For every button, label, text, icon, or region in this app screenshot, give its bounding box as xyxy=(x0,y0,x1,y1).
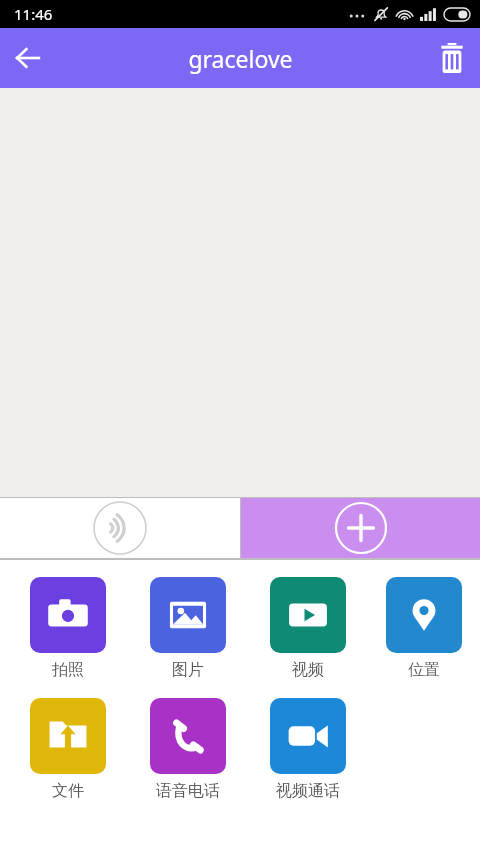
staticText: 视频通话 xyxy=(276,781,340,801)
button[interactable]: 语音电话 xyxy=(128,696,248,803)
button[interactable]: 图片 xyxy=(128,575,248,682)
button[interactable]: Voice message xyxy=(0,498,240,558)
staticText: 视频 xyxy=(292,660,324,680)
button[interactable]: 视频 xyxy=(248,575,368,682)
staticText: 语音电话 xyxy=(156,781,220,801)
staticText: 位置 xyxy=(408,660,440,680)
button[interactable]: Delete xyxy=(424,30,480,86)
staticText: 图片 xyxy=(172,660,204,680)
staticText: 文件 xyxy=(52,781,84,801)
button[interactable]: Back xyxy=(0,30,56,86)
staticText: gracelove xyxy=(188,43,293,74)
button[interactable]: Add attachment xyxy=(241,498,480,558)
staticText: 拍照 xyxy=(52,660,84,680)
button[interactable]: 拍照 xyxy=(8,575,128,682)
staticText: 11:46 xyxy=(14,4,53,24)
button[interactable]: 视频通话 xyxy=(248,696,368,803)
button[interactable]: 文件 xyxy=(8,696,128,803)
button[interactable]: 位置 xyxy=(368,575,480,682)
